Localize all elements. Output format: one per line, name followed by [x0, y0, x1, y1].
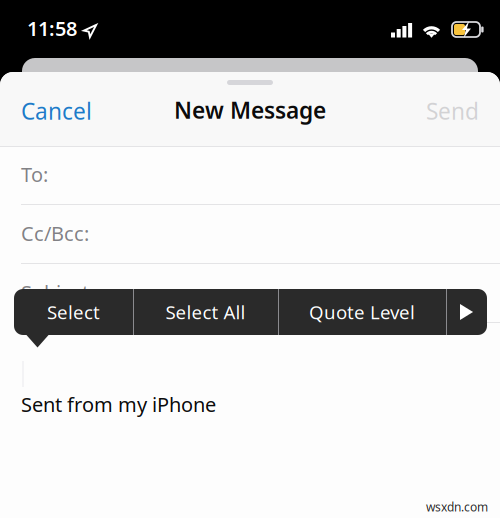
staticText: To:	[21, 161, 48, 188]
button[interactable]: To:	[0, 147, 500, 206]
button[interactable]: Send	[407, 94, 479, 128]
staticText: Quote Level	[309, 300, 415, 324]
button[interactable]: Show more edit actions	[446, 289, 487, 335]
button[interactable]: Select All	[133, 289, 278, 335]
button[interactable]: Cc/Bcc:	[0, 206, 500, 265]
staticText: Cc/Bcc:	[21, 220, 89, 247]
staticText: Select All	[165, 300, 245, 324]
button[interactable]: Cancel	[21, 94, 93, 128]
staticText: New Message	[174, 95, 326, 125]
staticText: Cancel	[21, 96, 92, 126]
staticText: Select	[47, 300, 100, 324]
staticText: Sent from my iPhone	[21, 391, 216, 418]
staticText: Subject:	[21, 279, 94, 306]
staticText: Send	[426, 96, 479, 126]
button[interactable]: Select	[14, 289, 133, 335]
button[interactable]: Quote Level	[278, 289, 446, 335]
staticText: wsxdn.com	[426, 499, 488, 515]
staticText: 11:58	[27, 15, 77, 42]
button[interactable]: Subject:	[0, 265, 500, 324]
button[interactable]: Sent from my iPhone	[0, 323, 500, 518]
